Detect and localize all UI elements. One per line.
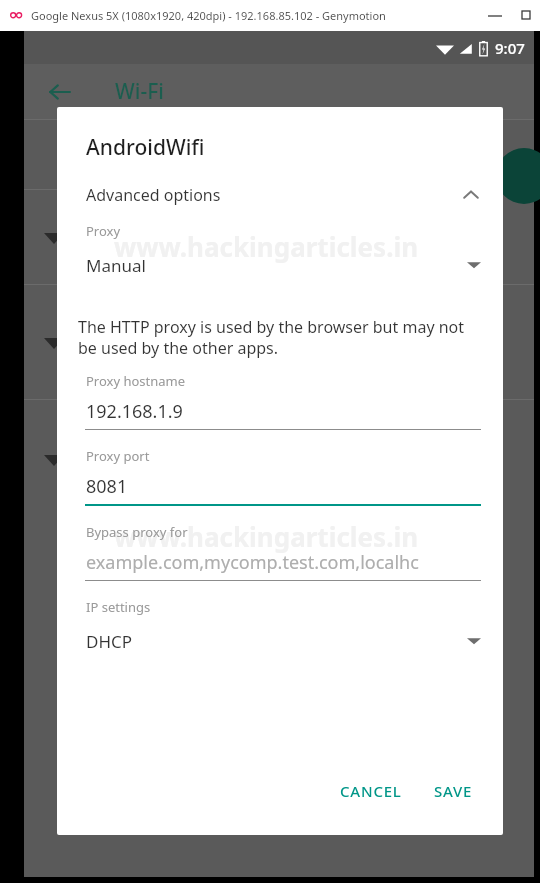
staticText: IP settings — [86, 598, 151, 616]
button[interactable]: Proxy port — [57, 447, 503, 506]
staticText: Wi-Fi — [115, 77, 164, 106]
staticText: The HTTP proxy is used by the browser bu… — [78, 316, 481, 359]
staticText: CANCEL — [340, 781, 402, 801]
button[interactable]: CANCEL — [330, 773, 412, 809]
staticText: Manual — [86, 254, 146, 277]
button[interactable]: Proxy hostname — [57, 372, 503, 430]
staticText: example.com,mycomp.test.com,localhc — [86, 550, 419, 575]
staticText: AndroidWifi — [86, 133, 205, 162]
staticText: Proxy hostname — [86, 372, 186, 390]
button[interactable]: DHCP — [57, 626, 503, 656]
staticText: 9:07 — [495, 38, 525, 58]
staticText: Google Nexus 5X (1080x1920, 420dpi) - 19… — [31, 8, 386, 23]
staticText: Advanced options — [86, 184, 221, 206]
staticText: DHCP — [86, 630, 133, 653]
button[interactable]: Back — [40, 72, 80, 112]
staticText: Proxy port — [86, 447, 150, 465]
staticText: www.hackingarticles.in — [114, 519, 419, 554]
button[interactable]: Manual — [57, 250, 503, 280]
staticText: 192.168.1.9 — [86, 399, 183, 424]
staticText: Bypass proxy for — [86, 523, 188, 541]
button[interactable]: Bypass proxy for — [57, 523, 503, 581]
staticText: SAVE — [434, 781, 473, 801]
button[interactable]: Add network — [496, 148, 540, 204]
button[interactable]: Advanced options — [57, 178, 503, 212]
staticText: Proxy — [86, 222, 121, 240]
button[interactable]: SAVE — [424, 773, 483, 809]
staticText: 8081 — [86, 474, 128, 499]
staticText: www.hackingarticles.in — [114, 229, 419, 264]
